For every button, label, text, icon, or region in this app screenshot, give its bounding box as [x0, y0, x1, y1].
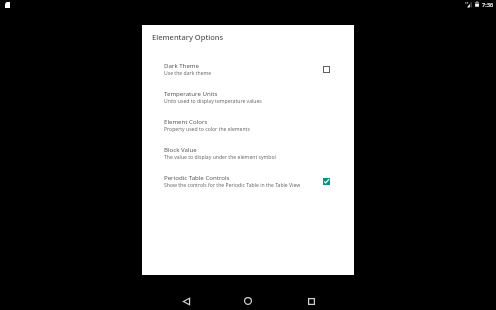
- button[interactable]: Toggle: [319, 62, 333, 76]
- staticText: Block Value: [164, 145, 197, 153]
- staticText: Show the controls for the Periodic Table…: [164, 182, 301, 189]
- button[interactable]: Block Value: [142, 142, 354, 164]
- button[interactable]: Temperature Units: [142, 86, 354, 108]
- staticText: Elementary Options: [152, 32, 224, 42]
- staticText: Dark Theme: [164, 61, 199, 69]
- staticText: Periodic Table Controls: [164, 173, 230, 181]
- staticText: Property used to color the elements: [164, 126, 250, 133]
- staticText: 7:36: [482, 1, 494, 9]
- button[interactable]: Recents: [299, 289, 323, 310]
- staticText: Units used to display temperature values: [164, 98, 262, 105]
- button[interactable]: Element Colors: [142, 114, 354, 136]
- staticText: The value to display under the element s…: [164, 154, 276, 161]
- button[interactable]: Toggle: [319, 174, 333, 188]
- button[interactable]: Periodic Table Controls: [142, 170, 354, 192]
- staticText: Element Colors: [164, 117, 208, 125]
- button[interactable]: Home: [236, 289, 260, 310]
- button[interactable]: Back: [174, 289, 198, 310]
- button[interactable]: Dark Theme: [142, 58, 354, 80]
- staticText: Use the dark theme: [164, 70, 212, 77]
- staticText: Temperature Units: [164, 89, 218, 97]
